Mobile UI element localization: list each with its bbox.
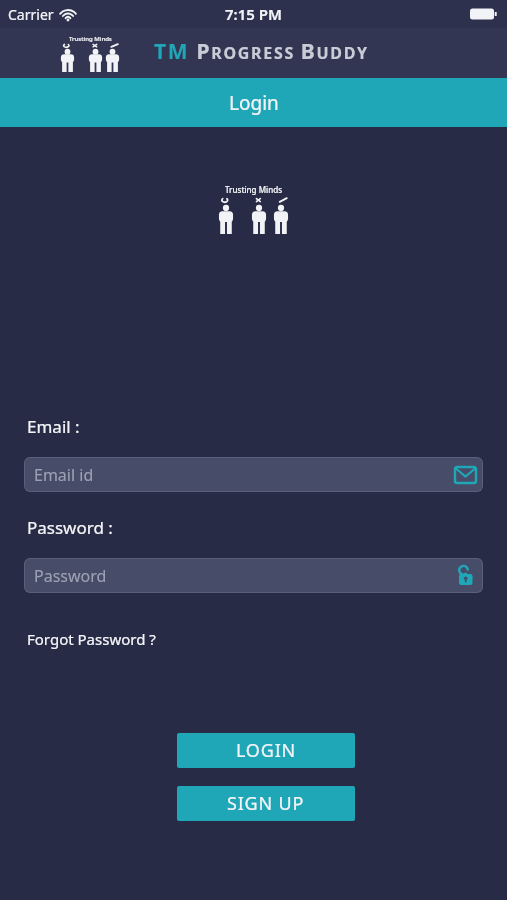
staticText: Password [34,565,107,587]
staticText: Carrier [8,5,54,24]
staticText: Password : [27,516,113,539]
staticText: SIGN UP [227,791,305,816]
button[interactable]: Forgot Password ? [27,629,156,649]
staticText: Email id [34,464,94,486]
staticText: 7:15 PM [225,4,282,24]
staticText: Trusting Minds [225,184,283,195]
button[interactable]: Login [0,78,507,127]
staticText: LOGIN [236,738,297,763]
staticText: Email : [27,415,80,438]
staticText: Forgot Password ? [27,629,156,649]
button[interactable]: LOGIN [177,733,355,768]
staticText: Trusting Minds [69,35,112,43]
button[interactable]: Password [25,559,482,592]
staticText: Login [229,90,279,116]
staticText: TM PROGRESS BUDDY [154,37,369,66]
button[interactable]: SIGN UP [177,786,355,821]
button[interactable]: Email id [25,458,482,491]
